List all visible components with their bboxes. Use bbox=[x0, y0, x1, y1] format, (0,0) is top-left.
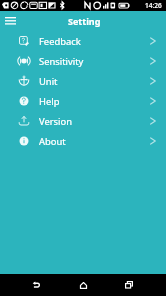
staticText: About bbox=[39, 135, 66, 148]
button[interactable]: Menu bbox=[0, 11, 20, 31]
button[interactable]: Feedback bbox=[0, 31, 166, 51]
staticText: Unit bbox=[39, 75, 58, 88]
button[interactable]: Recents bbox=[116, 274, 142, 296]
staticText: Setting bbox=[68, 15, 101, 27]
button[interactable]: Back bbox=[24, 274, 50, 296]
staticText: Feedback bbox=[39, 35, 81, 48]
button[interactable]: Home bbox=[70, 274, 96, 296]
staticText: Version bbox=[39, 115, 73, 128]
staticText: 14:26 bbox=[145, 1, 162, 10]
button[interactable]: Version bbox=[0, 111, 166, 131]
button[interactable]: Help bbox=[0, 91, 166, 111]
staticText: Sensitivity bbox=[39, 55, 84, 68]
button[interactable]: Unit bbox=[0, 71, 166, 91]
button[interactable]: About bbox=[0, 131, 166, 151]
button[interactable]: Sensitivity bbox=[0, 51, 166, 71]
staticText: Help bbox=[39, 95, 60, 108]
